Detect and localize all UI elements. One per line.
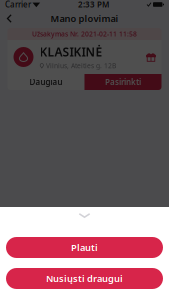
button[interactable]: Pasirinkti	[84, 74, 161, 90]
button[interactable]: Plauti	[6, 237, 163, 258]
button[interactable]: Back	[0, 9, 18, 28]
staticText: KLASIKINĖ	[39, 44, 102, 60]
staticText: Mano plovimai	[50, 12, 118, 25]
button[interactable]: Nusiųsti draugui	[6, 268, 163, 289]
staticText: Daugiau	[29, 77, 62, 87]
button[interactable]: Daugiau	[7, 74, 84, 90]
staticText: Pasirinkti	[105, 77, 141, 87]
staticText: Vilnius, Ateities g. 12B	[46, 61, 116, 70]
staticText: Užsakymas Nr. 2021-02-11 11:58	[32, 30, 137, 38]
staticText: Plauti	[71, 241, 98, 254]
staticText: 2:33 PM	[78, 0, 109, 10]
staticText: Carrier	[5, 0, 31, 10]
staticText: Nusiųsti draugui	[46, 272, 123, 285]
